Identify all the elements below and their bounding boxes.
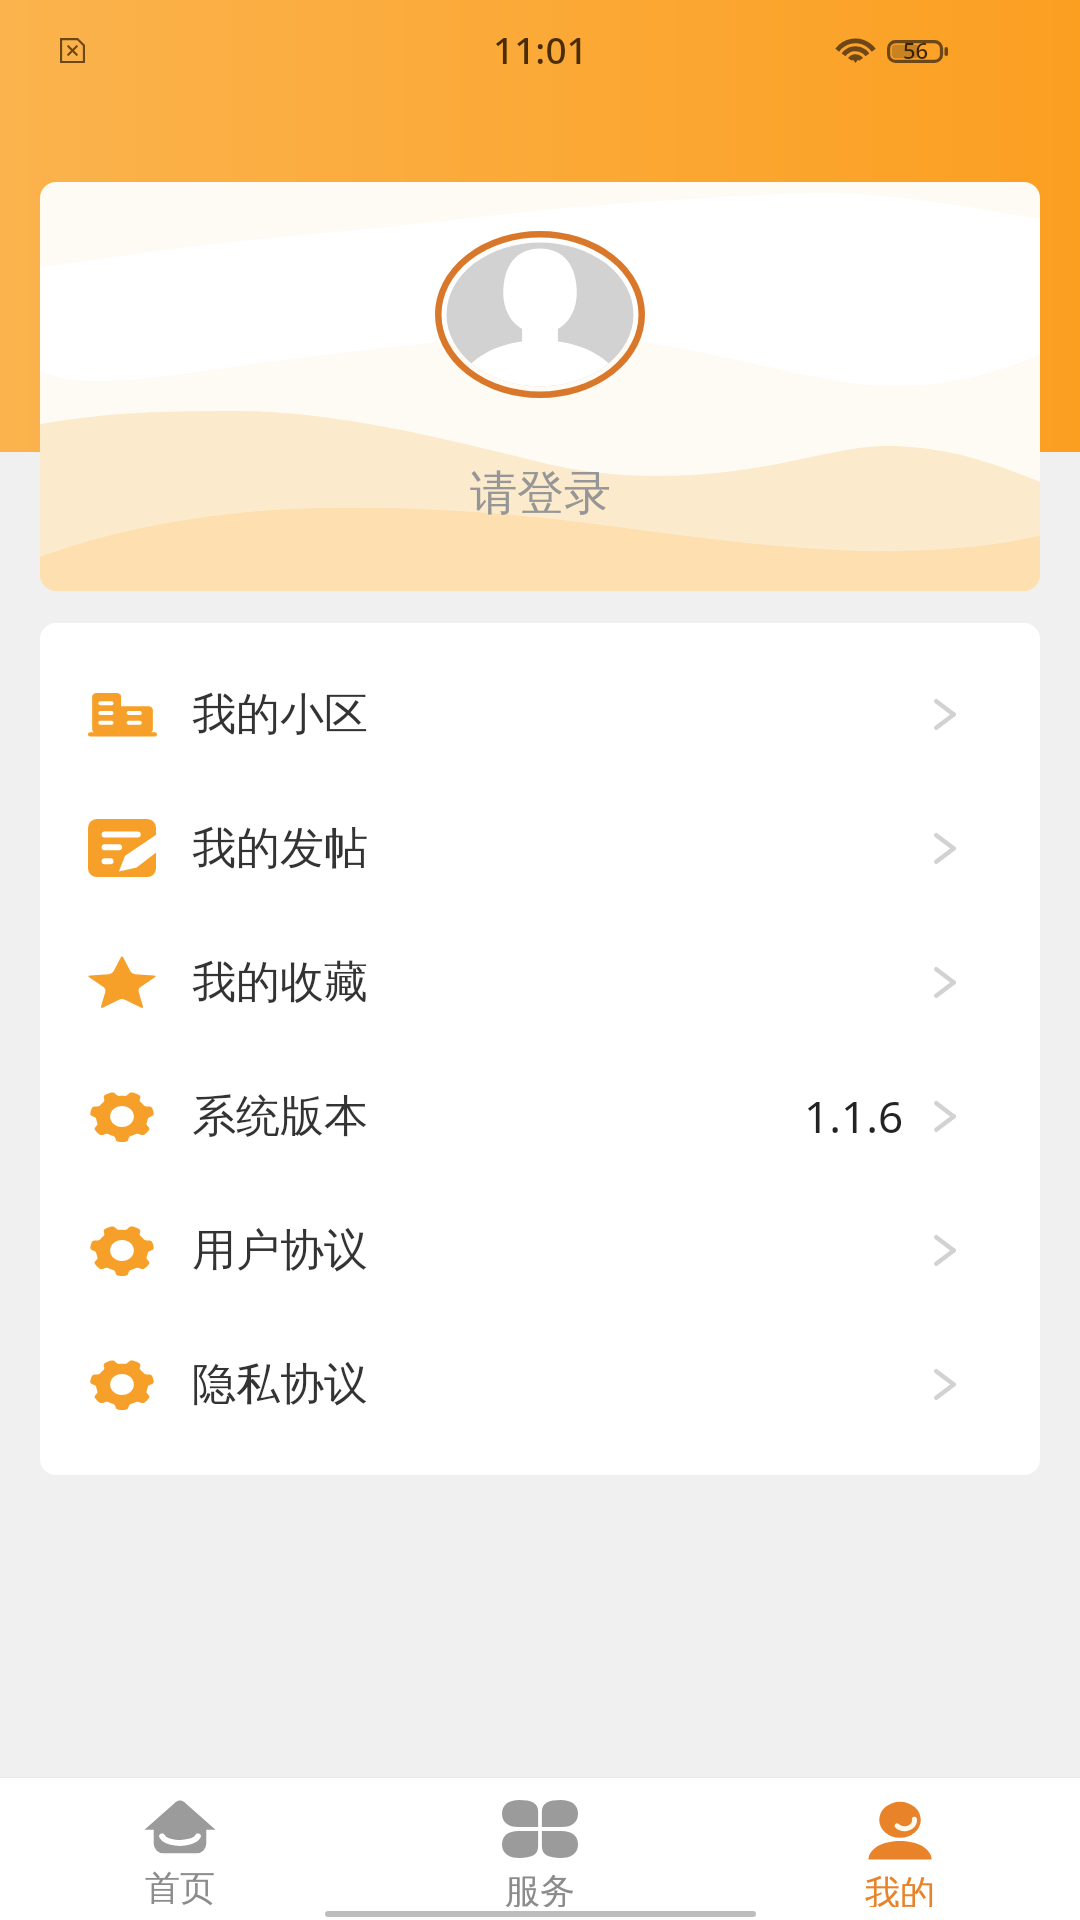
staticText: 我的发帖	[192, 821, 368, 876]
button[interactable]: 服务	[360, 1777, 720, 1907]
button[interactable]: 我的	[720, 1777, 1080, 1907]
staticText: 我的	[865, 1871, 935, 1907]
button[interactable]: 我的发帖	[40, 781, 1040, 915]
other: Broken image	[60, 38, 85, 63]
button[interactable]: 系统版本	[40, 1049, 1040, 1183]
other: Wi-Fi	[837, 40, 874, 63]
button[interactable]: 我的收藏	[40, 915, 1040, 1049]
staticText: 服务	[505, 1869, 575, 1907]
staticText: 11:01	[493, 24, 588, 74]
staticText: 用户协议	[192, 1223, 368, 1278]
staticText: 隐私协议	[192, 1357, 368, 1412]
staticText: 系统版本	[192, 1089, 368, 1144]
button[interactable]: 首页	[0, 1777, 360, 1907]
button[interactable]: 我的小区	[40, 647, 1040, 781]
staticText: 首页	[145, 1866, 215, 1907]
staticText: 1.1.6	[804, 1086, 904, 1146]
staticText: 请登录	[470, 464, 611, 523]
button[interactable]: 用户协议	[40, 1183, 1040, 1317]
button[interactable]: 隐私协议	[40, 1317, 1040, 1451]
staticText: 56	[903, 35, 929, 65]
staticText: 我的收藏	[192, 955, 368, 1010]
other: Battery 56 percent	[887, 40, 948, 63]
staticText: 我的小区	[192, 687, 368, 742]
button[interactable]: 请登录	[40, 182, 1040, 591]
